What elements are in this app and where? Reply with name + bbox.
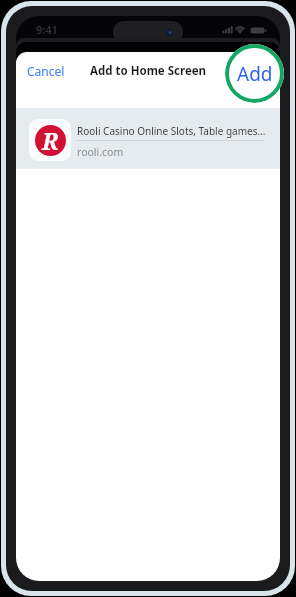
staticText: 9:41 [36, 22, 58, 37]
button[interactable]: R [16, 108, 280, 169]
button[interactable]: Cancel [22, 58, 70, 84]
staticText: Add [237, 61, 273, 87]
staticText: Rooli Casino Online Slots, Table games… [77, 124, 266, 138]
button[interactable]: Add [225, 44, 284, 103]
staticText: rooli.com [77, 145, 124, 159]
staticText: Add to Home Screen [90, 63, 207, 79]
staticText: Cancel [27, 63, 65, 79]
staticText: R [42, 125, 59, 156]
